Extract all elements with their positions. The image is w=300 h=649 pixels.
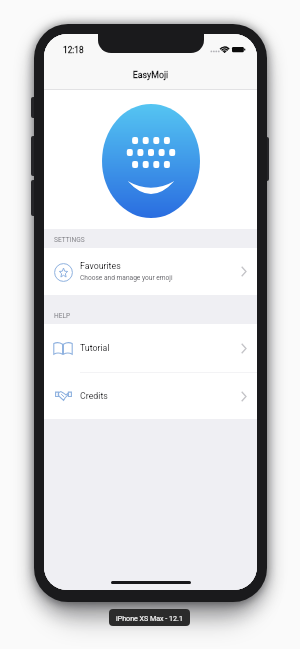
other: Tutorial [53,341,73,355]
button[interactable]: Favourites [44,248,257,295]
other: Favourites [54,263,73,282]
staticText: HELP [54,312,71,320]
staticText: Credits [80,391,108,401]
staticText: Favourites [80,261,121,271]
staticText: Tutorial [80,343,110,353]
staticText: SETTINGS [54,236,85,244]
other: Credits [55,391,72,402]
staticText: EasyMoji [44,70,257,80]
button[interactable]: Tutorial [44,324,257,372]
staticText: iPhone XS Max - 12.1 [116,614,183,622]
button[interactable]: Credits [44,373,257,419]
staticText: 12:18 [63,45,84,55]
staticText: Choose and manage your emoji [80,274,173,282]
